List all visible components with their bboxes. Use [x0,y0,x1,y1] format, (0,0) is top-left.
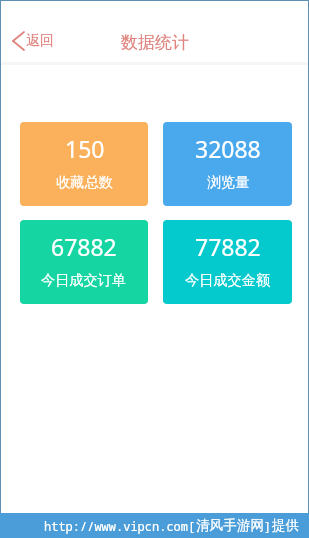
staticText: ] [264,518,272,534]
staticText: 收藏总数 [56,173,113,191]
staticText: 77882 [195,231,261,262]
staticText: 返回 [26,32,54,50]
staticText: 提供 [272,517,300,534]
button[interactable]: 77882 [163,220,292,304]
staticText: 150 [65,133,105,164]
staticText: 浏览量 [207,173,250,191]
staticText: 今日成交金额 [185,271,271,289]
button[interactable]: 32088 [163,122,292,206]
staticText: 32088 [195,133,261,164]
button[interactable]: 67882 [20,220,148,304]
staticText: 清风手游网 [196,517,264,534]
staticText: 数据统计 [121,32,189,53]
button[interactable]: 返回 [6,26,64,56]
staticText: http://www.vipcn.com[ [44,518,196,534]
staticText: 67882 [51,231,117,262]
staticText: 今日成交订单 [41,271,127,289]
button[interactable]: 150 [20,122,148,206]
